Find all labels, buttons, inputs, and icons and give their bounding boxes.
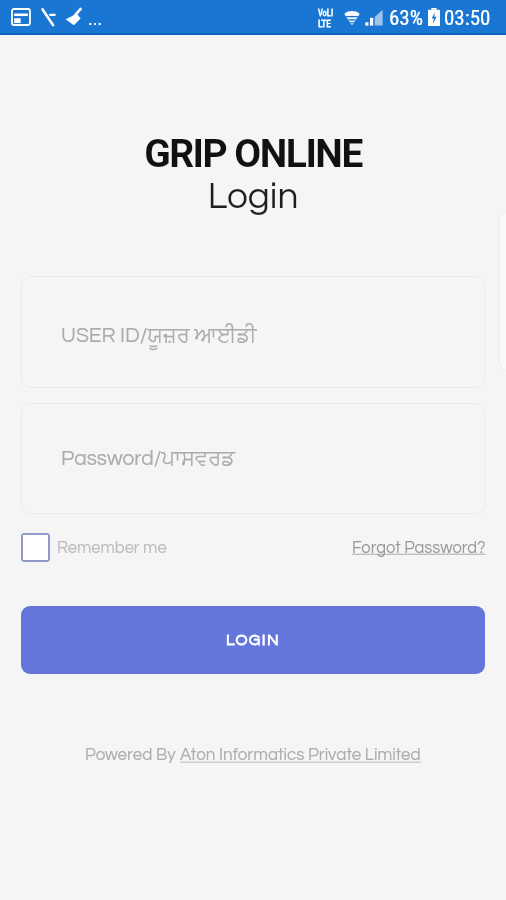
button[interactable]: LOGIN — [21, 606, 485, 674]
staticText: 03:50 — [444, 6, 491, 31]
staticText: Aton Informatics Private Limited — [180, 746, 421, 764]
button[interactable]: Password/ਪਾਸਵਰਡ — [21, 403, 485, 514]
staticText: GRIP ONLINE — [0, 131, 506, 177]
staticText: Login — [0, 178, 506, 216]
staticText: LOGIN — [226, 632, 281, 648]
staticText: Password/ਪਾਸਵਰਡ — [61, 448, 235, 470]
staticText: Remember me — [57, 539, 167, 556]
button[interactable]: USER ID/ਯੂਜ਼ਰ ਆਈਡੀ — [21, 276, 485, 388]
button[interactable]: Forgot Password? — [352, 539, 486, 556]
staticText: 63% — [389, 6, 424, 31]
staticText: USER ID/ਯੂਜ਼ਰ ਆਈਡੀ — [61, 325, 257, 347]
staticText: ... — [88, 8, 103, 29]
staticText: VoLI — [318, 8, 334, 18]
staticText: Forgot Password? — [352, 539, 486, 556]
button[interactable]: Aton Informatics Private Limited — [180, 746, 421, 764]
button[interactable]: Remember me — [21, 533, 167, 562]
staticText: Powered By — [85, 746, 180, 764]
staticText: LTE — [318, 18, 331, 29]
